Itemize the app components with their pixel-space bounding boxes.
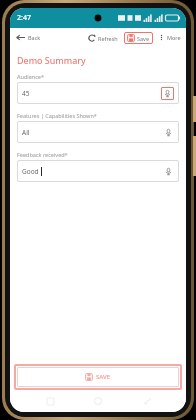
button[interactable]: Voice input (162, 165, 174, 177)
staticText: Audience* (17, 73, 44, 80)
button[interactable]: Home (89, 392, 107, 410)
staticText: Good (22, 167, 39, 176)
staticText: Features | Capabilities Shown* (17, 112, 97, 119)
button[interactable]: Recents (41, 392, 59, 410)
staticText: SAVE (96, 373, 111, 381)
button[interactable]: 45 (17, 82, 179, 104)
staticText: 2:47 (17, 13, 31, 23)
staticText: Back (28, 34, 41, 41)
staticText: Save (137, 35, 150, 42)
button[interactable]: SAVE (17, 367, 179, 387)
staticText: Refresh (98, 35, 118, 42)
button[interactable]: Voice input (161, 87, 174, 100)
button[interactable]: More (156, 32, 186, 43)
button[interactable]: Back (10, 31, 45, 44)
button[interactable]: Save (124, 32, 153, 44)
staticText: Feedback received* (17, 151, 68, 158)
button[interactable]: Refresh (85, 32, 121, 44)
button[interactable]: All (17, 121, 179, 143)
staticText: All (22, 128, 30, 137)
staticText: 45 (22, 89, 30, 98)
button[interactable]: Voice input (162, 126, 174, 138)
staticText: Demo Summary (17, 54, 86, 66)
button[interactable]: Good (17, 160, 179, 182)
staticText: More (167, 34, 181, 41)
